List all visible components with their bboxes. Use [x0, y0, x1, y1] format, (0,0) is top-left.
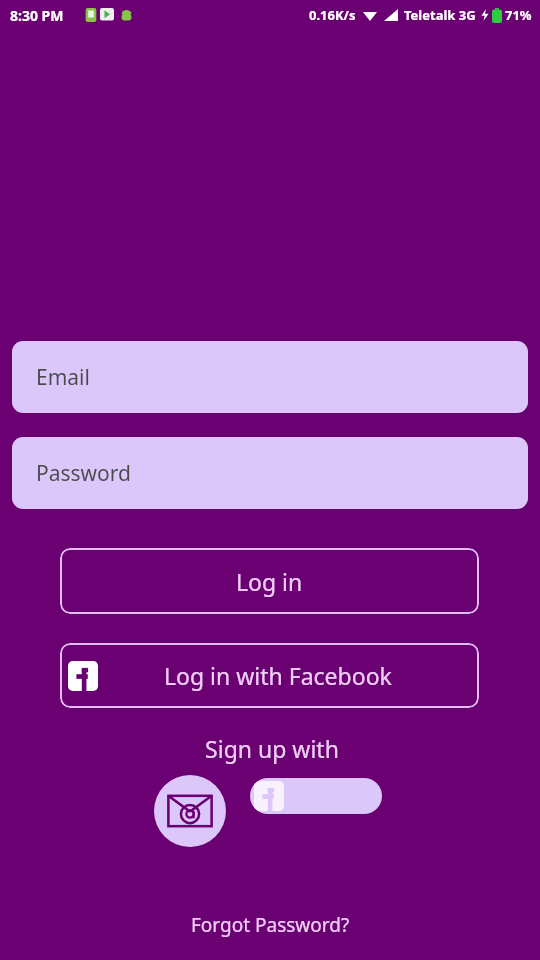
button[interactable]: Password	[12, 437, 528, 509]
staticText: Password	[36, 459, 131, 488]
button[interactable]: Sign up with email	[154, 775, 226, 847]
button[interactable]: Forgot Password?	[0, 908, 540, 942]
button[interactable]: Log in with Facebook	[60, 643, 479, 708]
button[interactable]: Log in	[60, 548, 479, 614]
staticText: 0.16K/s	[309, 6, 356, 24]
staticText: 71%	[505, 6, 532, 24]
staticText: Email	[36, 363, 90, 392]
staticText: Log in with Facebook	[164, 660, 392, 691]
staticText: Sign up with	[2, 733, 540, 764]
staticText: 8:30 PM	[10, 6, 64, 25]
button[interactable]: Email	[12, 341, 528, 413]
button[interactable]: Sign up with Facebook	[250, 778, 382, 814]
staticText: Forgot Password?	[191, 912, 350, 938]
staticText: Teletalk 3G	[404, 6, 476, 24]
staticText: Log in	[236, 566, 303, 597]
